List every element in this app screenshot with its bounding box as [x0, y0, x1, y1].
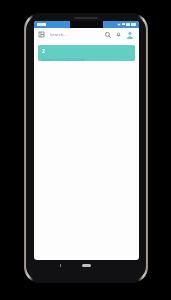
- button[interactable]: Profile: [125, 30, 135, 40]
- button[interactable]: Notifications: [114, 30, 123, 39]
- button[interactable]: Search: [103, 30, 112, 39]
- staticText: Assets verified by awards: [42, 57, 85, 61]
- staticText: 2: [42, 48, 45, 55]
- button[interactable]: Menu: [38, 31, 45, 38]
- button[interactable]: 2: [38, 45, 135, 61]
- button[interactable]: Search...: [50, 28, 103, 41]
- staticText: Search...: [50, 32, 67, 38]
